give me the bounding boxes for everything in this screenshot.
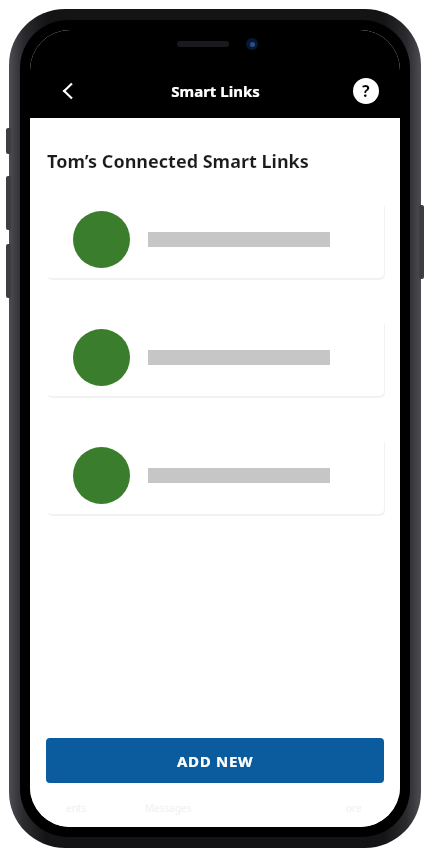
button[interactable]: Back [48, 71, 88, 111]
button[interactable]: Messages [122, 801, 214, 815]
button[interactable] [46, 318, 384, 396]
button[interactable]: ADD NEW [46, 738, 384, 783]
staticText: ore [346, 801, 362, 815]
button[interactable] [46, 200, 384, 278]
button[interactable]: Help [349, 74, 383, 108]
button[interactable] [46, 436, 384, 514]
staticText: Messages [145, 801, 192, 815]
button[interactable]: ents [30, 801, 122, 815]
staticText: ? [362, 80, 370, 102]
staticText: Smart Links [171, 81, 260, 101]
staticText: ents [66, 801, 87, 815]
button[interactable]: ore [307, 801, 400, 815]
staticText: Tom’s Connected Smart Links [47, 149, 309, 174]
staticText: ADD NEW [177, 751, 254, 771]
